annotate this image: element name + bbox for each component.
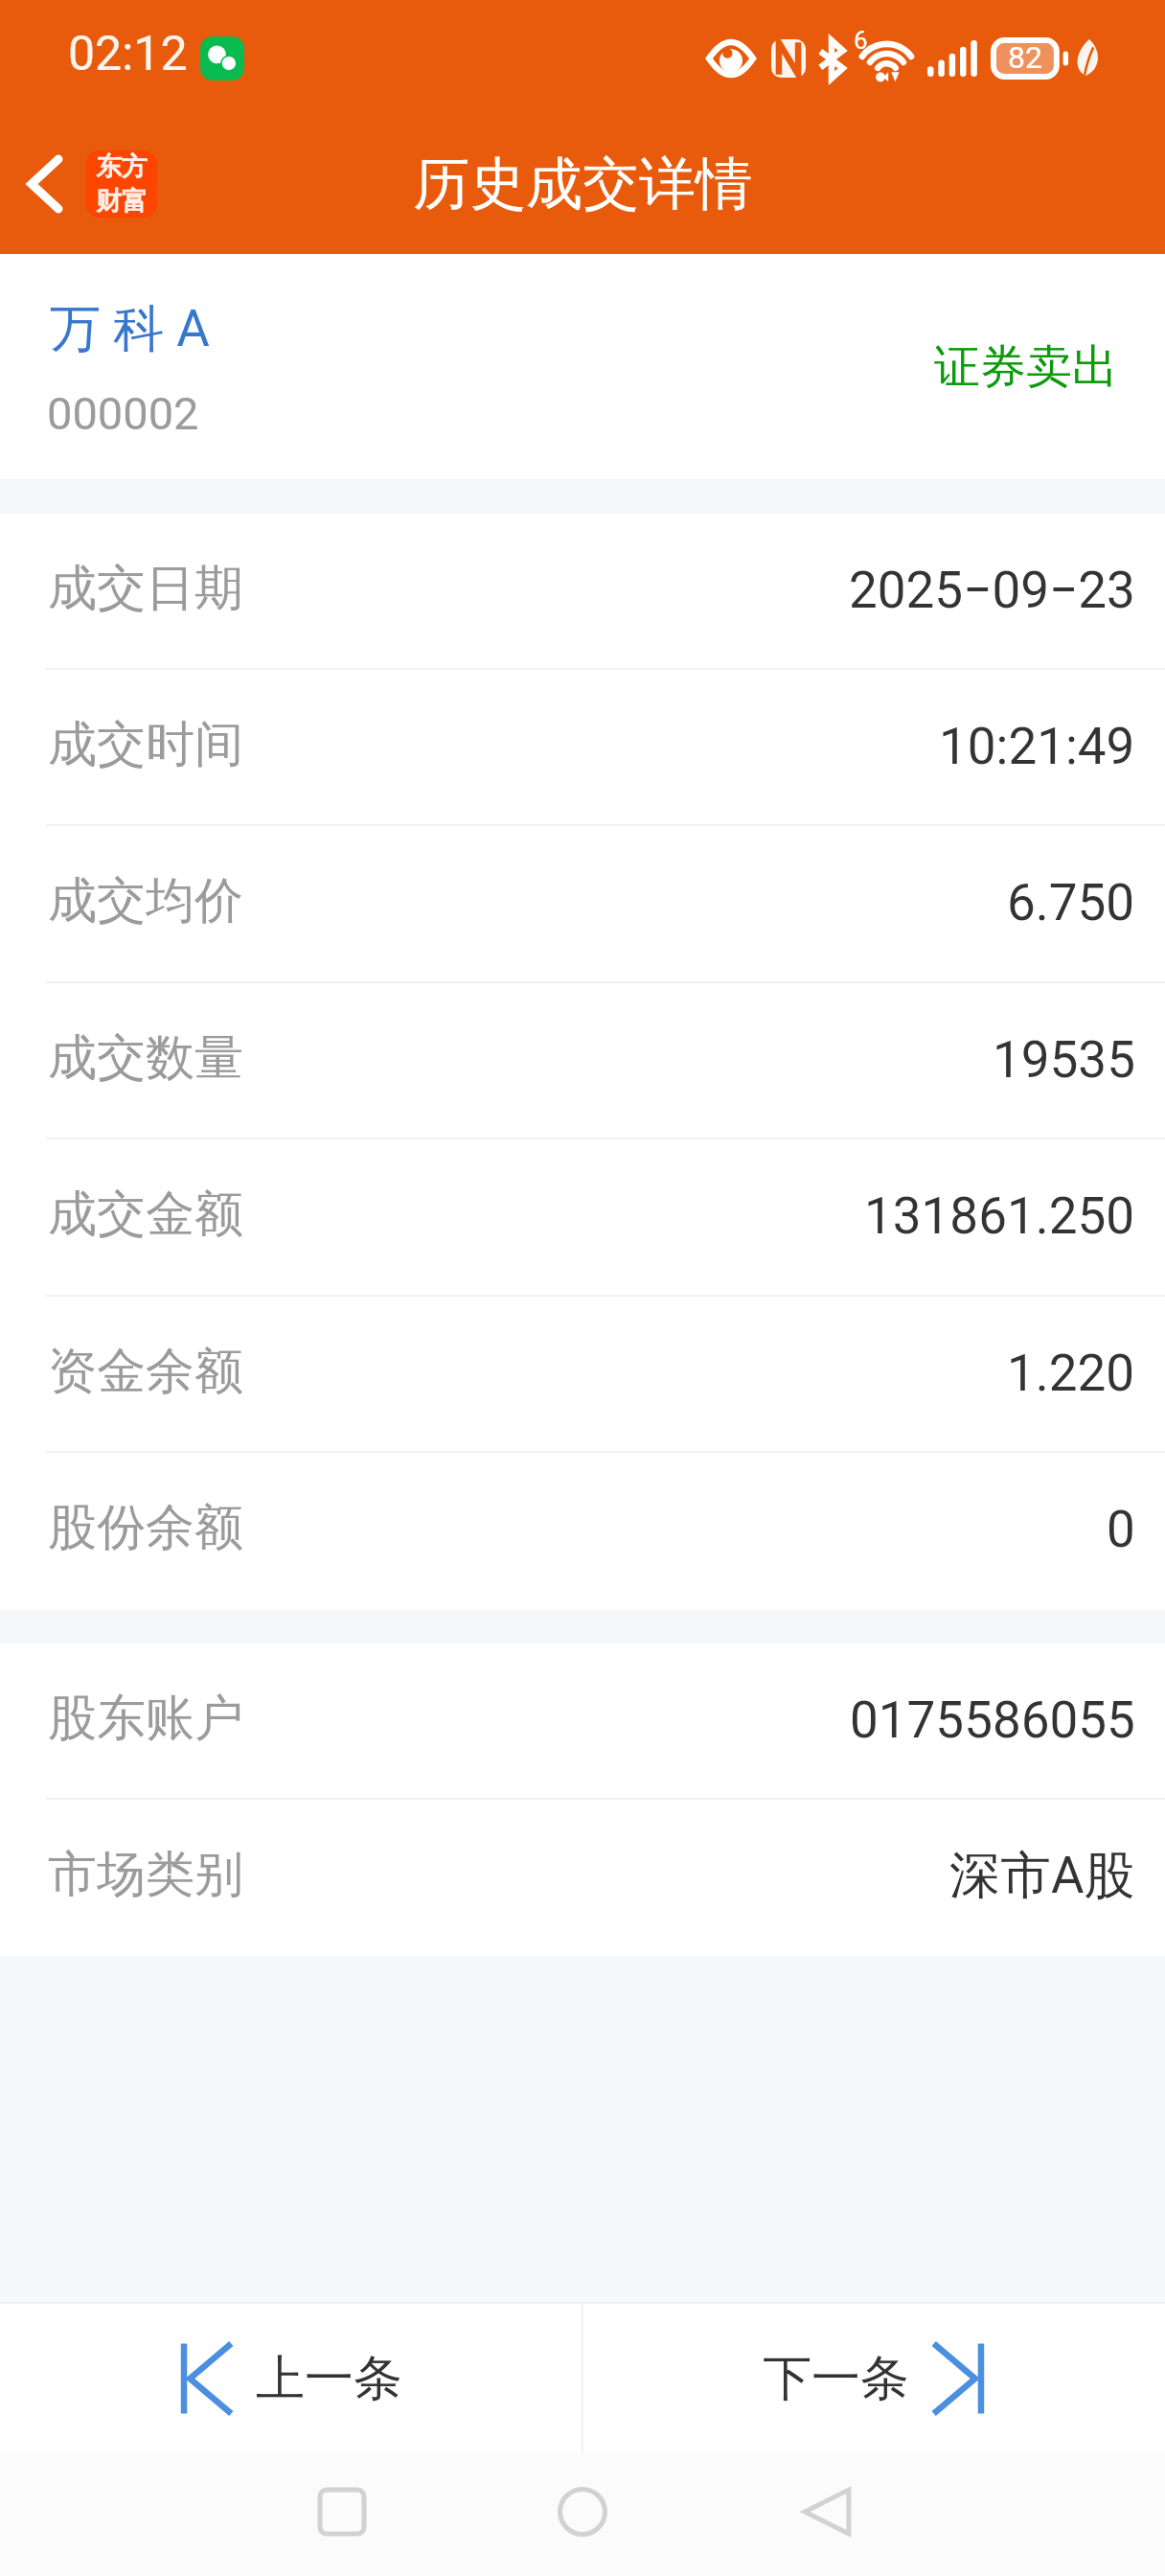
button[interactable]: 下一条 bbox=[583, 2304, 1165, 2453]
staticText: 成交日期 bbox=[48, 558, 243, 619]
staticText: 上一条 bbox=[256, 2348, 402, 2409]
staticText: 02:12 bbox=[68, 26, 188, 82]
button[interactable]: 成交金额 bbox=[0, 1139, 1165, 1297]
button[interactable]: 股东账户 bbox=[0, 1644, 1165, 1800]
button[interactable]: Back bbox=[8, 146, 82, 222]
staticText: 6.750 bbox=[1007, 873, 1135, 932]
button[interactable]: 上一条 bbox=[0, 2304, 582, 2453]
staticText: 历史成交详情 bbox=[413, 149, 752, 219]
button[interactable]: Back bbox=[802, 2487, 852, 2537]
staticText: 成交均价 bbox=[48, 870, 243, 931]
staticText: 资金余额 bbox=[48, 1341, 243, 1402]
button[interactable]: Recent apps bbox=[320, 2490, 364, 2534]
staticText: 成交金额 bbox=[48, 1184, 243, 1245]
button[interactable]: 股份余额 bbox=[0, 1453, 1165, 1610]
staticText: 东方 bbox=[96, 150, 148, 183]
staticText: 财富 bbox=[96, 185, 148, 218]
staticText: 成交数量 bbox=[48, 1027, 243, 1089]
staticText: 深市A股 bbox=[949, 1844, 1135, 1908]
staticText: 19535 bbox=[993, 1030, 1135, 1090]
button[interactable]: 资金余额 bbox=[0, 1297, 1165, 1453]
staticText: 2025‒09‒23 bbox=[849, 561, 1135, 620]
button[interactable]: 成交数量 bbox=[0, 983, 1165, 1139]
staticText: 市场类别 bbox=[48, 1844, 243, 1905]
button[interactable]: Home bbox=[558, 2487, 607, 2537]
staticText: 股东账户 bbox=[48, 1688, 243, 1749]
staticText: 1.220 bbox=[1007, 1344, 1135, 1403]
staticText: 下一条 bbox=[763, 2348, 909, 2409]
button[interactable]: 成交时间 bbox=[0, 670, 1165, 826]
button[interactable]: 市场类别 bbox=[0, 1800, 1165, 1956]
staticText: 0 bbox=[1107, 1500, 1135, 1559]
staticText: 股份余额 bbox=[48, 1497, 243, 1558]
staticText: 证券卖出 bbox=[934, 338, 1118, 396]
staticText: 0175586055 bbox=[850, 1690, 1135, 1750]
staticText: 6 bbox=[854, 26, 868, 55]
staticText: 131861.250 bbox=[864, 1186, 1135, 1246]
button[interactable]: 成交日期 bbox=[0, 514, 1165, 670]
staticText: 10:21:49 bbox=[939, 717, 1135, 776]
staticText: 82 bbox=[1008, 39, 1042, 76]
button[interactable]: East Money home bbox=[86, 150, 157, 218]
staticText: 000002 bbox=[47, 387, 199, 440]
button[interactable]: 成交均价 bbox=[0, 826, 1165, 983]
staticText: 万 科 A bbox=[50, 297, 210, 361]
staticText: 成交时间 bbox=[48, 714, 243, 775]
